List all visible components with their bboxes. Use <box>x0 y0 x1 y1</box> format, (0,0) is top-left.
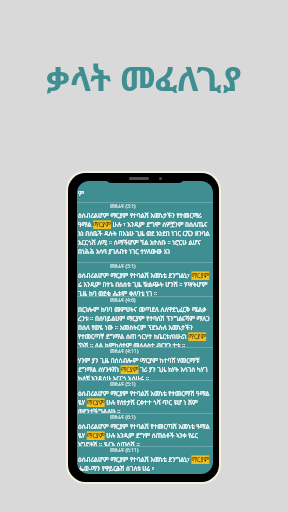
button[interactable]: መጽሐፍ (4:6) <box>77 296 213 347</box>
staticText: ዕሰብሪልሆም ማርያም የተባልሽ አመኑቴ የተመርማሽ ዓማል ዬሃ ማር… <box>78 389 212 413</box>
staticText: መጽሐፍ (3:1) <box>110 263 136 270</box>
staticText: ዕሰብሪልሆም ማርያም የተባልሽ አመኑታችን የተመርማሪ ዓማል ማርያ… <box>78 211 212 256</box>
staticText: በርነሎም ከባባ መምሀትና መጣደለ ለለዋደኒፈርቅ ሜልቃ ረንቱ ። … <box>78 305 212 347</box>
button[interactable]: መጽሐፍ (5:1) <box>77 380 213 413</box>
staticText: መጽሐፍ (3:1) <box>110 203 136 210</box>
button[interactable]: መጽሐፍ (6:11) <box>77 446 213 474</box>
staticText: መጽሐፍ (6:1) <box>110 414 136 421</box>
staticText: ዕሰብሪልሆም ማርያም የተባልሽ የተመርጣሽ አመኑቴ ዓማል ዬሃ ማር… <box>78 422 212 446</box>
button[interactable]: መጽሐፍ (3:1) <box>77 262 213 296</box>
staticText: ቃላት መፈለጊያ <box>0 55 288 101</box>
staticText: ዕሰብሪልሆም ማርያም የተባልሽ አመኑቴ ደንግልኒ፣ ማርያም ሔወ-ማ… <box>78 455 212 473</box>
staticText: ዕሰብሪልሆም ማርያም የተባልሽ አመኑቴ ደንግልኒ፣ ማርያም ሬ እን… <box>78 271 212 296</box>
staticText: መጽሐፍ (4:11) <box>110 348 139 355</box>
staticText: መጽሐፍ (6:11) <box>110 447 139 454</box>
staticText: ም <box>78 189 85 199</box>
button[interactable]: መጽሐፍ (3:1) <box>77 202 213 262</box>
staticText: መጽሐፍ (4:6) <box>110 297 136 304</box>
staticText: ሃንም ያን ጊዜ በሰሰብሎም ማርያም ከተባሸ ሃመርማቹ ደግማል ሰሃ… <box>78 356 212 380</box>
staticText: መጽሐፍ (5:1) <box>110 381 136 388</box>
button[interactable]: መጽሐፍ (4:11) <box>77 347 213 380</box>
button[interactable]: መጽሐፍ (6:1) <box>77 413 213 446</box>
